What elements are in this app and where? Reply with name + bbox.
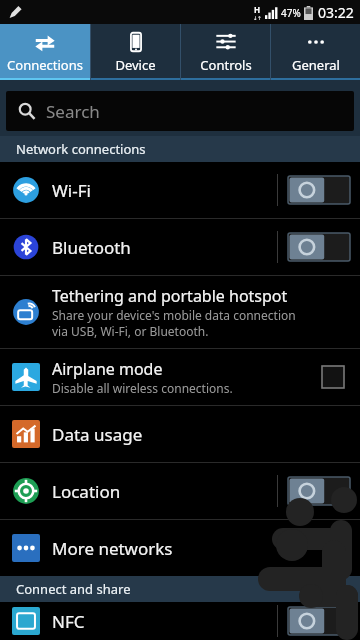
staticText: Airplane mode bbox=[52, 358, 163, 380]
staticText: ↓↑ bbox=[253, 15, 262, 21]
staticText: Location bbox=[52, 480, 277, 503]
button[interactable]: Search bbox=[6, 91, 354, 131]
staticText: More networks bbox=[52, 537, 173, 560]
button[interactable]: NFC switch bbox=[288, 607, 350, 635]
button[interactable]: Airplane mode checkbox bbox=[322, 366, 344, 388]
button[interactable]: Device bbox=[91, 24, 180, 80]
staticText: Share your device's mobile data connecti… bbox=[52, 307, 296, 323]
staticText: Network connections bbox=[16, 140, 146, 158]
staticText: Tethering and portable hotspot bbox=[52, 285, 288, 307]
staticText: Controls bbox=[200, 56, 252, 74]
staticText: 03:22 bbox=[318, 3, 354, 22]
staticText: Bluetooth bbox=[52, 236, 277, 259]
staticText: Disable all wireless connections. bbox=[52, 380, 233, 396]
button[interactable]: Bluetooth switch bbox=[288, 233, 350, 261]
button[interactable]: Wi-Fi bbox=[0, 162, 360, 218]
staticText: Search bbox=[46, 100, 100, 123]
button[interactable]: General bbox=[271, 24, 360, 80]
staticText: NFC bbox=[52, 610, 277, 633]
staticText: Connect and share bbox=[16, 580, 131, 598]
staticText: Data usage bbox=[52, 423, 143, 446]
button[interactable]: Location bbox=[0, 463, 360, 519]
button[interactable]: Wi-Fi switch bbox=[288, 176, 350, 204]
staticText: Connections bbox=[7, 56, 83, 74]
staticText: 47% bbox=[281, 6, 301, 20]
staticText: Wi-Fi bbox=[52, 179, 277, 202]
button[interactable]: Connections bbox=[0, 24, 90, 80]
button[interactable]: Airplane mode bbox=[0, 349, 360, 405]
button[interactable]: Tethering and portable hotspot bbox=[0, 276, 360, 348]
staticText: General bbox=[292, 56, 340, 74]
button[interactable]: NFC bbox=[0, 602, 360, 640]
button[interactable]: Location switch bbox=[288, 477, 350, 505]
staticText: H bbox=[254, 4, 261, 15]
button[interactable]: Data usage bbox=[0, 406, 360, 462]
button[interactable]: More networks bbox=[0, 520, 360, 576]
button[interactable]: Bluetooth bbox=[0, 219, 360, 275]
staticText: Device bbox=[115, 56, 156, 74]
staticText: via USB, Wi-Fi, or Bluetooth. bbox=[52, 323, 209, 339]
button[interactable]: Controls bbox=[181, 24, 270, 80]
